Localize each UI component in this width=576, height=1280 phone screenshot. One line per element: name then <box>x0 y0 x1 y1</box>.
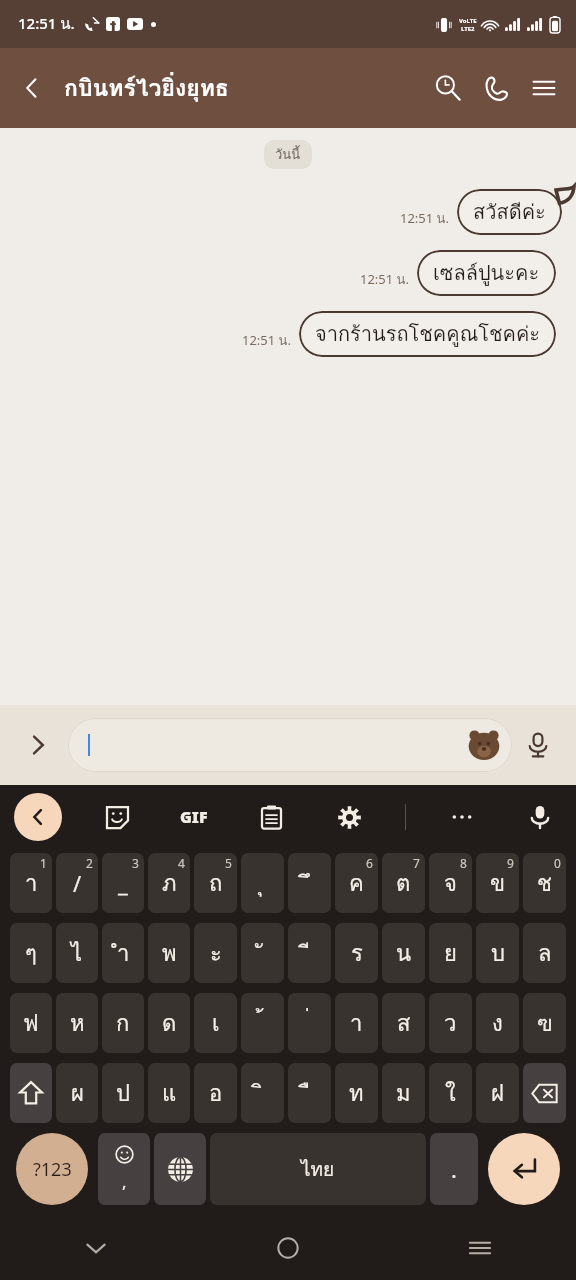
button[interactable]: ี <box>288 923 331 983</box>
button[interactable]: Expand options <box>12 719 64 771</box>
button[interactable]: เซลล์ปูนะคะ <box>417 250 556 296</box>
button[interactable]: Stickers <box>68 718 512 772</box>
staticText: _ <box>118 868 128 898</box>
button[interactable]: Back <box>8 64 56 112</box>
button[interactable]: Shift <box>10 1063 52 1123</box>
button[interactable]: ค <box>335 853 378 913</box>
button[interactable]: ก <box>102 993 144 1053</box>
button[interactable]: Menu <box>520 64 568 112</box>
button[interactable]: ฃ <box>523 993 566 1053</box>
staticText: แ <box>162 1076 177 1111</box>
button[interactable]: GIF <box>172 795 216 839</box>
button[interactable]: ุ <box>241 853 284 913</box>
staticText: บ <box>491 936 505 971</box>
button[interactable]: Stickers <box>466 727 502 763</box>
button[interactable]: น <box>382 923 425 983</box>
button[interactable]: Enter <box>488 1133 560 1205</box>
button[interactable]: า <box>335 993 378 1053</box>
button[interactable]: ื <box>288 1063 331 1123</box>
button[interactable]: สวัสดีค่ะ <box>457 189 562 235</box>
staticText: 8 <box>460 855 467 871</box>
button[interactable]: ใ <box>429 1063 472 1123</box>
button[interactable]: Call <box>472 64 520 112</box>
staticText: ย <box>444 936 457 971</box>
staticText: วันนี้ <box>275 144 301 165</box>
button[interactable]: จ <box>429 853 472 913</box>
button[interactable]: ต <box>382 853 425 913</box>
button[interactable]: ฝ <box>476 1063 519 1123</box>
staticText: 7 <box>413 855 420 871</box>
button[interactable]: ว <box>429 993 472 1053</box>
button[interactable]: ไทย <box>210 1133 426 1205</box>
button[interactable]: ย <box>429 923 472 983</box>
button[interactable]: ะ <box>194 923 237 983</box>
button[interactable]: ส <box>382 993 425 1053</box>
staticText: ม <box>396 1076 411 1111</box>
staticText: สวัสดีค่ะ <box>473 196 546 228</box>
staticText: ข <box>490 866 506 901</box>
button[interactable]: Search <box>424 64 472 112</box>
button[interactable]: ช <box>523 853 566 913</box>
button[interactable]: Voice input <box>518 795 562 839</box>
staticText: ะ <box>210 936 222 971</box>
button[interactable]: / <box>56 853 98 913</box>
button[interactable]: อ <box>194 1063 237 1123</box>
staticText: อ <box>209 1076 223 1111</box>
button[interactable]: ด <box>148 993 190 1053</box>
staticText: 12:51 น. <box>242 330 291 351</box>
button[interactable]: Recent apps <box>384 1216 576 1280</box>
button[interactable]: า <box>10 853 52 913</box>
staticText: ด <box>162 1006 177 1041</box>
button[interactable]: Collapse toolbar <box>14 793 62 841</box>
button[interactable]: Emoji <box>98 1133 150 1205</box>
staticText: 4 <box>178 855 185 871</box>
button[interactable]: ้ <box>241 993 284 1053</box>
button[interactable]: Clipboard <box>249 795 293 839</box>
button[interactable]: Settings <box>327 795 371 839</box>
button[interactable]: ั <box>241 923 284 983</box>
staticText: 5 <box>225 855 232 871</box>
button[interactable]: ผ <box>56 1063 98 1123</box>
staticText: ๆ <box>25 936 37 971</box>
button[interactable]: ๆ <box>10 923 52 983</box>
button[interactable]: ่ <box>288 993 331 1053</box>
button[interactable]: ฟ <box>10 993 52 1053</box>
button[interactable]: จากร้านรถโชคคูณโชคค่ะ <box>299 311 556 357</box>
button[interactable]: ง <box>476 993 519 1053</box>
button[interactable]: _ <box>102 853 144 913</box>
button[interactable]: เ <box>194 993 237 1053</box>
staticText: ล <box>538 936 552 971</box>
button[interactable]: ม <box>382 1063 425 1123</box>
button[interactable]: ล <box>523 923 566 983</box>
staticText: / <box>73 868 82 898</box>
button[interactable]: Hide keyboard <box>0 1216 192 1280</box>
staticText: ต <box>396 866 411 901</box>
button[interactable]: ร <box>335 923 378 983</box>
button[interactable]: ำ <box>102 923 144 983</box>
button[interactable]: Stickers <box>95 795 139 839</box>
button[interactable]: Voice message <box>512 719 564 771</box>
button[interactable]: พ <box>148 923 190 983</box>
button[interactable]: ห <box>56 993 98 1053</box>
staticText: จ <box>444 866 457 901</box>
staticText: ไทย <box>301 1154 335 1184</box>
staticText: ถ <box>209 866 223 901</box>
button[interactable]: ท <box>335 1063 378 1123</box>
staticText: 6 <box>366 855 373 871</box>
button[interactable]: ึ <box>288 853 331 913</box>
button[interactable]: Backspace <box>523 1063 566 1123</box>
button[interactable]: More options <box>440 795 484 839</box>
button[interactable]: วันนี้ <box>264 140 312 169</box>
button[interactable]: ิ <box>241 1063 284 1123</box>
button[interactable]: ป <box>102 1063 144 1123</box>
button[interactable]: Change language <box>154 1133 206 1205</box>
button[interactable]: . <box>430 1133 478 1205</box>
button[interactable]: ภ <box>148 853 190 913</box>
button[interactable]: ไ <box>56 923 98 983</box>
button[interactable]: ข <box>476 853 519 913</box>
button[interactable]: แ <box>148 1063 190 1123</box>
button[interactable]: ?123 <box>16 1133 88 1205</box>
button[interactable]: ถ <box>194 853 237 913</box>
button[interactable]: บ <box>476 923 519 983</box>
button[interactable]: Home <box>192 1216 384 1280</box>
